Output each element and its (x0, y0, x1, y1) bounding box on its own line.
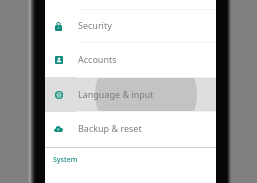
button[interactable]: Backup & reset (45, 111, 216, 147)
button[interactable]: Security (45, 9, 216, 42)
staticText: System (53, 155, 78, 165)
staticText: Accounts (78, 53, 117, 65)
button[interactable]: Language & input (45, 77, 216, 112)
staticText: Backup & reset (78, 122, 142, 134)
button[interactable]: Accounts (45, 42, 216, 77)
staticText: Language & input (78, 88, 154, 100)
staticText: Security (78, 19, 112, 31)
